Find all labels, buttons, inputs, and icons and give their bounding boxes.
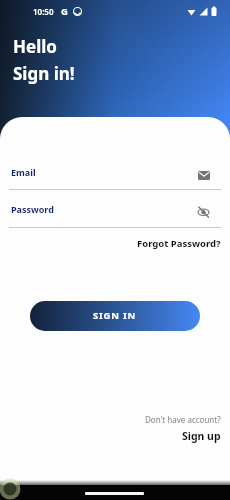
button[interactable]: Sign up	[182, 429, 221, 443]
staticText: Sign up	[182, 429, 221, 443]
button[interactable]: SIGN IN	[30, 301, 200, 331]
staticText: Email	[11, 166, 36, 178]
staticText: Password	[11, 203, 54, 215]
staticText: 10:50	[33, 6, 54, 17]
staticText: Hello	[13, 35, 57, 58]
staticText: Forgot Password?	[137, 237, 221, 250]
button[interactable]: Forgot Password?	[137, 237, 221, 250]
staticText: Sign in!	[13, 62, 75, 85]
button[interactable]: Email	[9, 166, 221, 180]
staticText: G	[61, 5, 68, 18]
button[interactable]: Password	[9, 203, 221, 215]
staticText: SIGN IN	[93, 309, 137, 322]
staticText: Don't have account?	[145, 414, 221, 425]
